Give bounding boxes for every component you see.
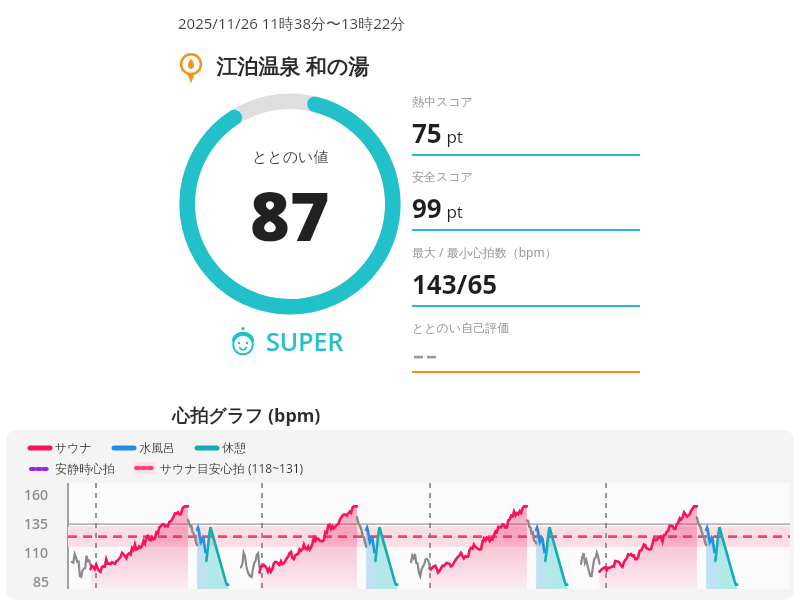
- staticText: 2025/11/26 11時38分〜13時22分: [178, 13, 406, 33]
- staticText: 安全スコア: [412, 169, 473, 184]
- button[interactable]: サウナ: [6, 430, 794, 600]
- staticText: 85: [33, 572, 50, 591]
- staticText: サウナ目安心拍 (118~131): [160, 460, 304, 476]
- button[interactable]: 最大 / 最小心拍数（bpm）: [412, 244, 640, 307]
- button[interactable]: Super rank: [228, 324, 344, 358]
- staticText: 心拍グラフ (bpm): [172, 403, 321, 428]
- staticText: 135: [24, 514, 49, 533]
- staticText: pt: [442, 200, 464, 223]
- other: Super rank: [228, 326, 258, 356]
- staticText: 160: [24, 485, 49, 504]
- staticText: 75: [412, 115, 442, 150]
- staticText: 99: [412, 190, 442, 225]
- staticText: 江泊温泉 和の湯: [216, 52, 369, 81]
- button[interactable]: 安全スコア: [412, 169, 640, 231]
- button[interactable]: Sauna venue: [176, 44, 369, 88]
- staticText: 熱中スコア: [412, 94, 473, 109]
- staticText: 安静時心拍: [55, 461, 115, 476]
- staticText: pt: [442, 125, 464, 148]
- staticText: 110: [24, 543, 49, 562]
- button[interactable]: ととのい自己評価: [412, 320, 640, 373]
- staticText: 87: [250, 168, 330, 261]
- button[interactable]: 熱中スコア: [412, 94, 640, 156]
- staticText: ととのい値: [252, 148, 329, 167]
- staticText: SUPER: [266, 324, 344, 358]
- staticText: ととのい自己評価: [412, 320, 510, 335]
- other: Sauna venue: [176, 51, 206, 81]
- staticText: 休憩: [222, 440, 246, 455]
- staticText: 最大 / 最小心拍数（bpm）: [412, 244, 557, 260]
- staticText: サウナ: [55, 440, 92, 455]
- staticText: 水風呂: [139, 440, 175, 455]
- staticText: 143/65: [412, 266, 498, 301]
